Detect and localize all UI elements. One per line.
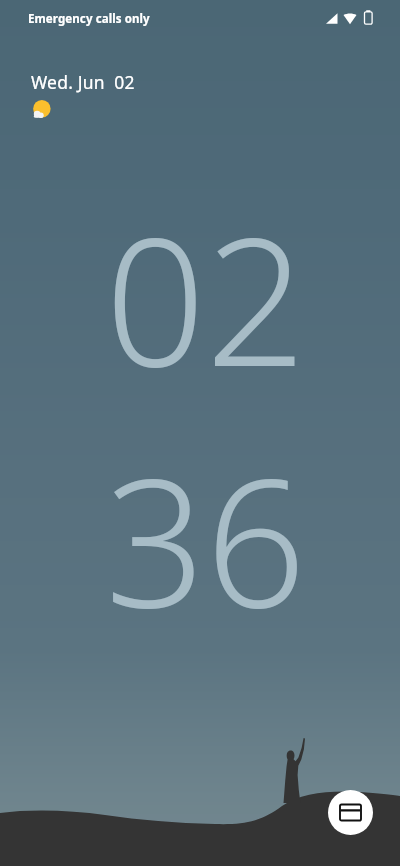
staticText: 02: [105, 178, 306, 418]
button[interactable]: Wallet: [328, 790, 373, 835]
staticText: Wed. Jun 02: [31, 70, 135, 94]
staticText: 36: [105, 419, 306, 659]
staticText: Emergency calls only: [28, 11, 150, 27]
